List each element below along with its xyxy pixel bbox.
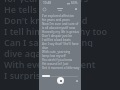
staticText: He tells me about	[4, 3, 82, 14]
button[interactable]: Queue	[76, 80, 78, 82]
staticText: I've explored affection	[42, 14, 75, 18]
staticText: Can I say something	[4, 36, 93, 47]
staticText: You wish if you know	[42, 58, 73, 62]
staticText: With even a moment	[4, 58, 96, 69]
staticText: lamp low myself	[42, 54, 66, 58]
button[interactable]: Close	[42, 7, 47, 12]
staticText: Don't know second	[4, 14, 88, 25]
staticText: Yet wound in? Just	[42, 62, 69, 66]
staticText: With cute, yearning emotion	[42, 50, 80, 54]
button[interactable]: Pause	[57, 77, 64, 84]
button[interactable]: More options	[75, 8, 77, 10]
staticText: I'm scared now	[4, 80, 71, 82]
staticText: for years and years	[42, 18, 70, 22]
staticText: Get it moment a little way	[42, 66, 80, 70]
staticText: I surprise myself	[4, 69, 78, 80]
staticText: for years and years	[4, 0, 89, 3]
staticText: Honestly my life is genius	[42, 30, 79, 34]
staticText: dive again	[4, 47, 50, 58]
staticText: I tell him really why too	[4, 25, 108, 36]
staticText: Are I say that? She'll have a	[42, 42, 80, 46]
staticText: dive	[42, 46, 49, 50]
staticText: I will let a bad beats pretty	[42, 38, 80, 42]
staticText: is all about myself now	[42, 26, 76, 30]
staticText: Now I'm sure and sure of it	[42, 22, 80, 26]
staticText: 63%	[71, 1, 78, 5]
staticText: Don't despair just be respond a	[42, 34, 80, 38]
staticText: 10:48	[43, 1, 52, 5]
